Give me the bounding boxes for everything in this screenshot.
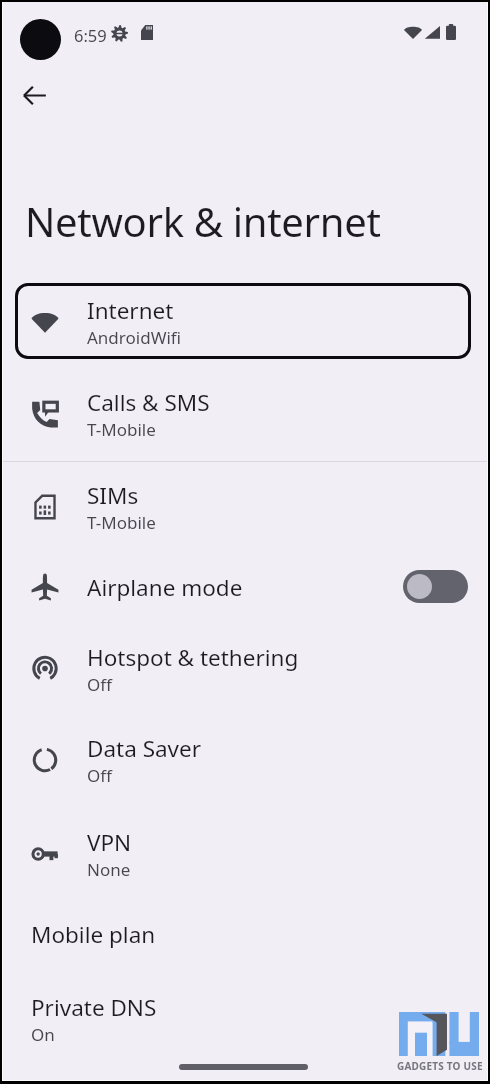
button[interactable]: Private DNS [3, 985, 487, 1053]
staticText: None [87, 858, 131, 881]
button[interactable]: VPN [3, 820, 487, 888]
button[interactable]: Mobile plan [3, 910, 487, 958]
staticText: On [31, 1023, 55, 1046]
staticText: Data Saver [87, 733, 202, 764]
button[interactable]: SIMs [3, 473, 487, 541]
staticText: T-Mobile [87, 418, 156, 441]
button[interactable] [15, 283, 471, 359]
button[interactable]: Hotspot & tethering [3, 635, 487, 703]
button[interactable]: Airplane mode [3, 563, 487, 611]
button[interactable]: Calls & SMS [3, 380, 487, 448]
staticText: Airplane mode [87, 572, 243, 603]
staticText: Off [87, 764, 112, 787]
staticText: Mobile plan [31, 919, 156, 950]
staticText: Private DNS [31, 992, 157, 1023]
staticText: Network & internet [25, 194, 381, 248]
staticText: Off [87, 673, 112, 696]
button[interactable]: Back [12, 73, 56, 117]
staticText: Internet [87, 295, 174, 326]
button[interactable]: Data Saver [3, 726, 487, 794]
button[interactable]: Internet [3, 288, 487, 356]
staticText: GADGETS TO USE [397, 1059, 483, 1073]
staticText: VPN [87, 827, 132, 858]
staticText: SIMs [87, 480, 139, 511]
staticText: AndroidWifi [87, 326, 182, 349]
staticText: Hotspot & tethering [87, 642, 299, 673]
staticText: 6:59 [74, 24, 107, 46]
staticText: T-Mobile [87, 511, 156, 534]
button[interactable]: Airplane mode [403, 570, 468, 603]
staticText: Calls & SMS [87, 387, 210, 418]
